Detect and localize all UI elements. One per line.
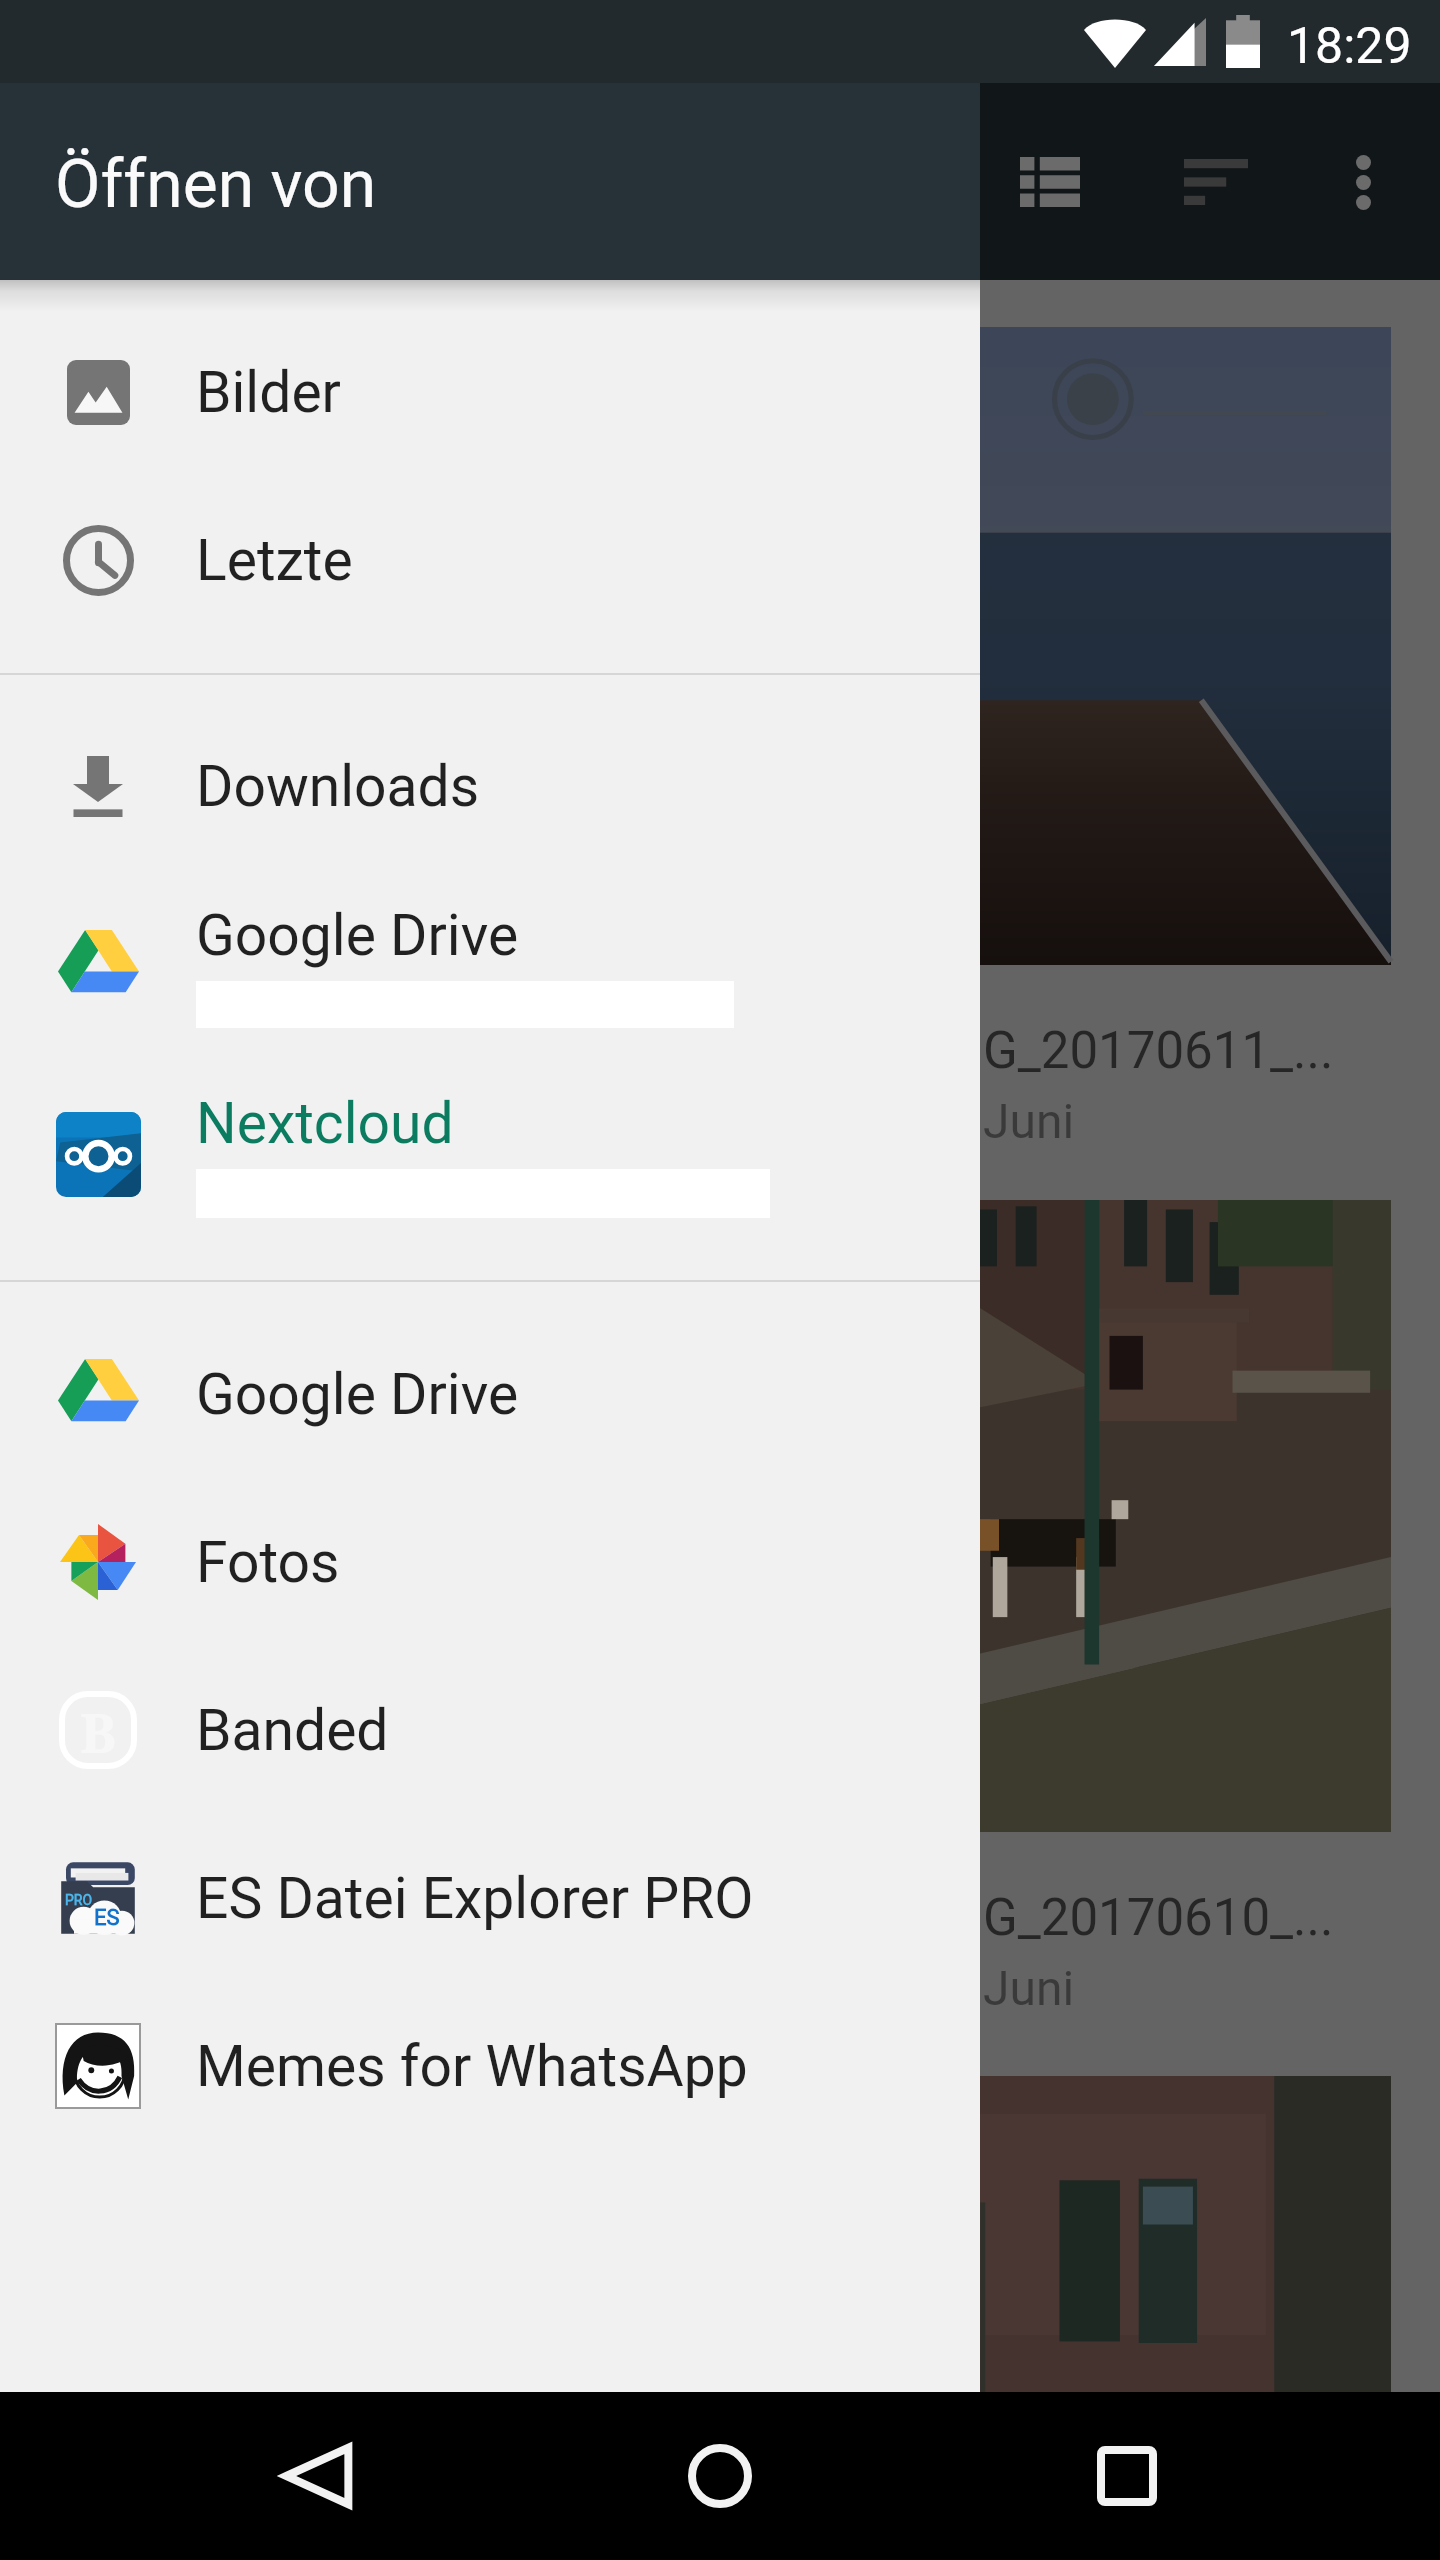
button[interactable]: Memes for WhatsApp <box>0 1982 980 2150</box>
staticText: Juni <box>983 1960 1075 2016</box>
staticText: Fotos <box>196 1529 340 1596</box>
staticText: Memes for WhatsApp <box>196 2033 748 2100</box>
button[interactable]: B <box>0 1646 980 1814</box>
staticText: Google Drive <box>196 902 519 969</box>
button[interactable]: Recent apps <box>1057 2406 1197 2546</box>
button[interactable]: PRO <box>0 1814 980 1982</box>
button[interactable]: G_20170611_... <box>974 327 1391 1154</box>
button[interactable]: List view <box>980 112 1120 252</box>
staticText: Downloads <box>196 753 480 820</box>
staticText: Bilder <box>196 359 341 426</box>
button[interactable]: G_20170610_... <box>974 1200 1391 2007</box>
button[interactable]: Home <box>650 2406 790 2546</box>
button[interactable]: Google Drive <box>0 870 980 1060</box>
button[interactable]: Downloads <box>0 702 980 870</box>
staticText: Banded <box>196 1697 389 1764</box>
button[interactable]: Nextcloud <box>0 1060 980 1248</box>
staticText: Juni <box>983 1093 1075 1149</box>
button[interactable] <box>974 2076 1391 2392</box>
button[interactable]: Sort <box>1146 112 1286 252</box>
staticText: G_20170610_... <box>983 1888 1334 1948</box>
button[interactable]: Fotos <box>0 1478 980 1646</box>
staticText: B <box>80 1695 117 1769</box>
staticText: Nextcloud <box>196 1090 454 1157</box>
staticText: G_20170611_... <box>983 1021 1334 1081</box>
button[interactable]: More options <box>1293 112 1433 252</box>
button[interactable]: Bilder <box>0 308 980 476</box>
staticText: ES <box>94 1905 120 1931</box>
staticText: ES Datei Explorer PRO <box>196 1865 754 1932</box>
staticText: PRO <box>65 1892 93 1908</box>
staticText: 18:29 <box>1287 17 1412 76</box>
staticText: Öffnen von <box>55 146 377 223</box>
staticText: Letzte <box>196 527 353 594</box>
button[interactable]: Google Drive <box>0 1310 980 1478</box>
button[interactable]: Letzte <box>0 476 980 644</box>
button[interactable]: Back <box>248 2406 388 2546</box>
staticText: Google Drive <box>196 1361 519 1428</box>
